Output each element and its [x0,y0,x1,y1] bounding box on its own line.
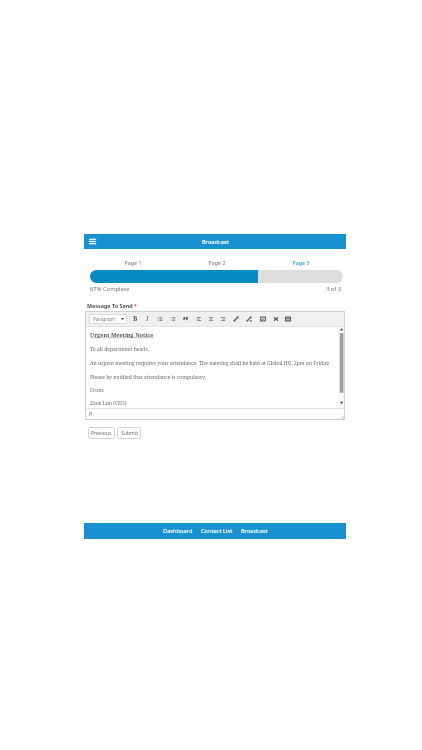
button[interactable]: Remove link [243,314,255,324]
button[interactable]: Insert link [230,314,242,324]
button[interactable]: Submit [117,427,141,439]
staticText: To all department heads, [90,346,149,353]
button[interactable]: Insert image [257,314,269,324]
button[interactable]: Insert table [282,314,294,324]
staticText: Urgent Meeting Notice [90,331,154,339]
staticText: 3 of 3 [326,285,342,293]
button[interactable]: Menu [88,237,97,246]
button[interactable]: Previous [88,427,115,439]
button[interactable]: Align left [193,314,205,324]
button[interactable]: Page 3 [259,259,343,266]
staticText: B [133,314,138,323]
button[interactable]: Contact List [197,525,237,537]
staticText: Page 1 [124,259,142,266]
staticText: Submit [121,430,138,437]
staticText: 67% Complete [90,285,130,293]
staticText: p [89,410,93,417]
staticText: I [146,314,149,323]
button[interactable]: Numbered list [167,314,179,324]
button[interactable]: Paragraph [89,314,127,324]
staticText: An urgent meeting requires your attendan… [90,360,330,367]
button[interactable]: Broadcast [237,525,272,537]
button[interactable]: Align right [217,314,229,324]
staticText: Contact List [201,527,233,535]
button[interactable]: Block quote [180,314,192,324]
staticText: * [134,302,137,309]
staticText: Dashboard [163,527,193,535]
button[interactable]: Align center [205,314,217,324]
button[interactable]: Clear formatting [270,314,282,324]
button[interactable]: Italic [141,313,153,324]
staticText: Page 3 [292,259,310,266]
staticText: Broadcast [202,238,229,246]
staticText: From: [90,387,105,394]
button[interactable]: Page 2 [175,259,259,266]
staticText: Page 2 [208,259,226,266]
button[interactable]: Bulleted list [154,314,166,324]
button[interactable]: Scroll [338,327,345,408]
staticText: Zack Lim (CEO) [90,400,127,407]
staticText: Previous [91,430,112,437]
button[interactable]: Page 1 [90,259,175,266]
staticText: Broadcast [241,527,268,535]
staticText: Message To Send [87,302,134,309]
staticText: Paragraph [93,316,116,322]
staticText: Please be notified that attendance is co… [90,374,206,381]
button[interactable]: Dashboard [159,525,197,537]
button[interactable]: Bold [129,313,141,324]
